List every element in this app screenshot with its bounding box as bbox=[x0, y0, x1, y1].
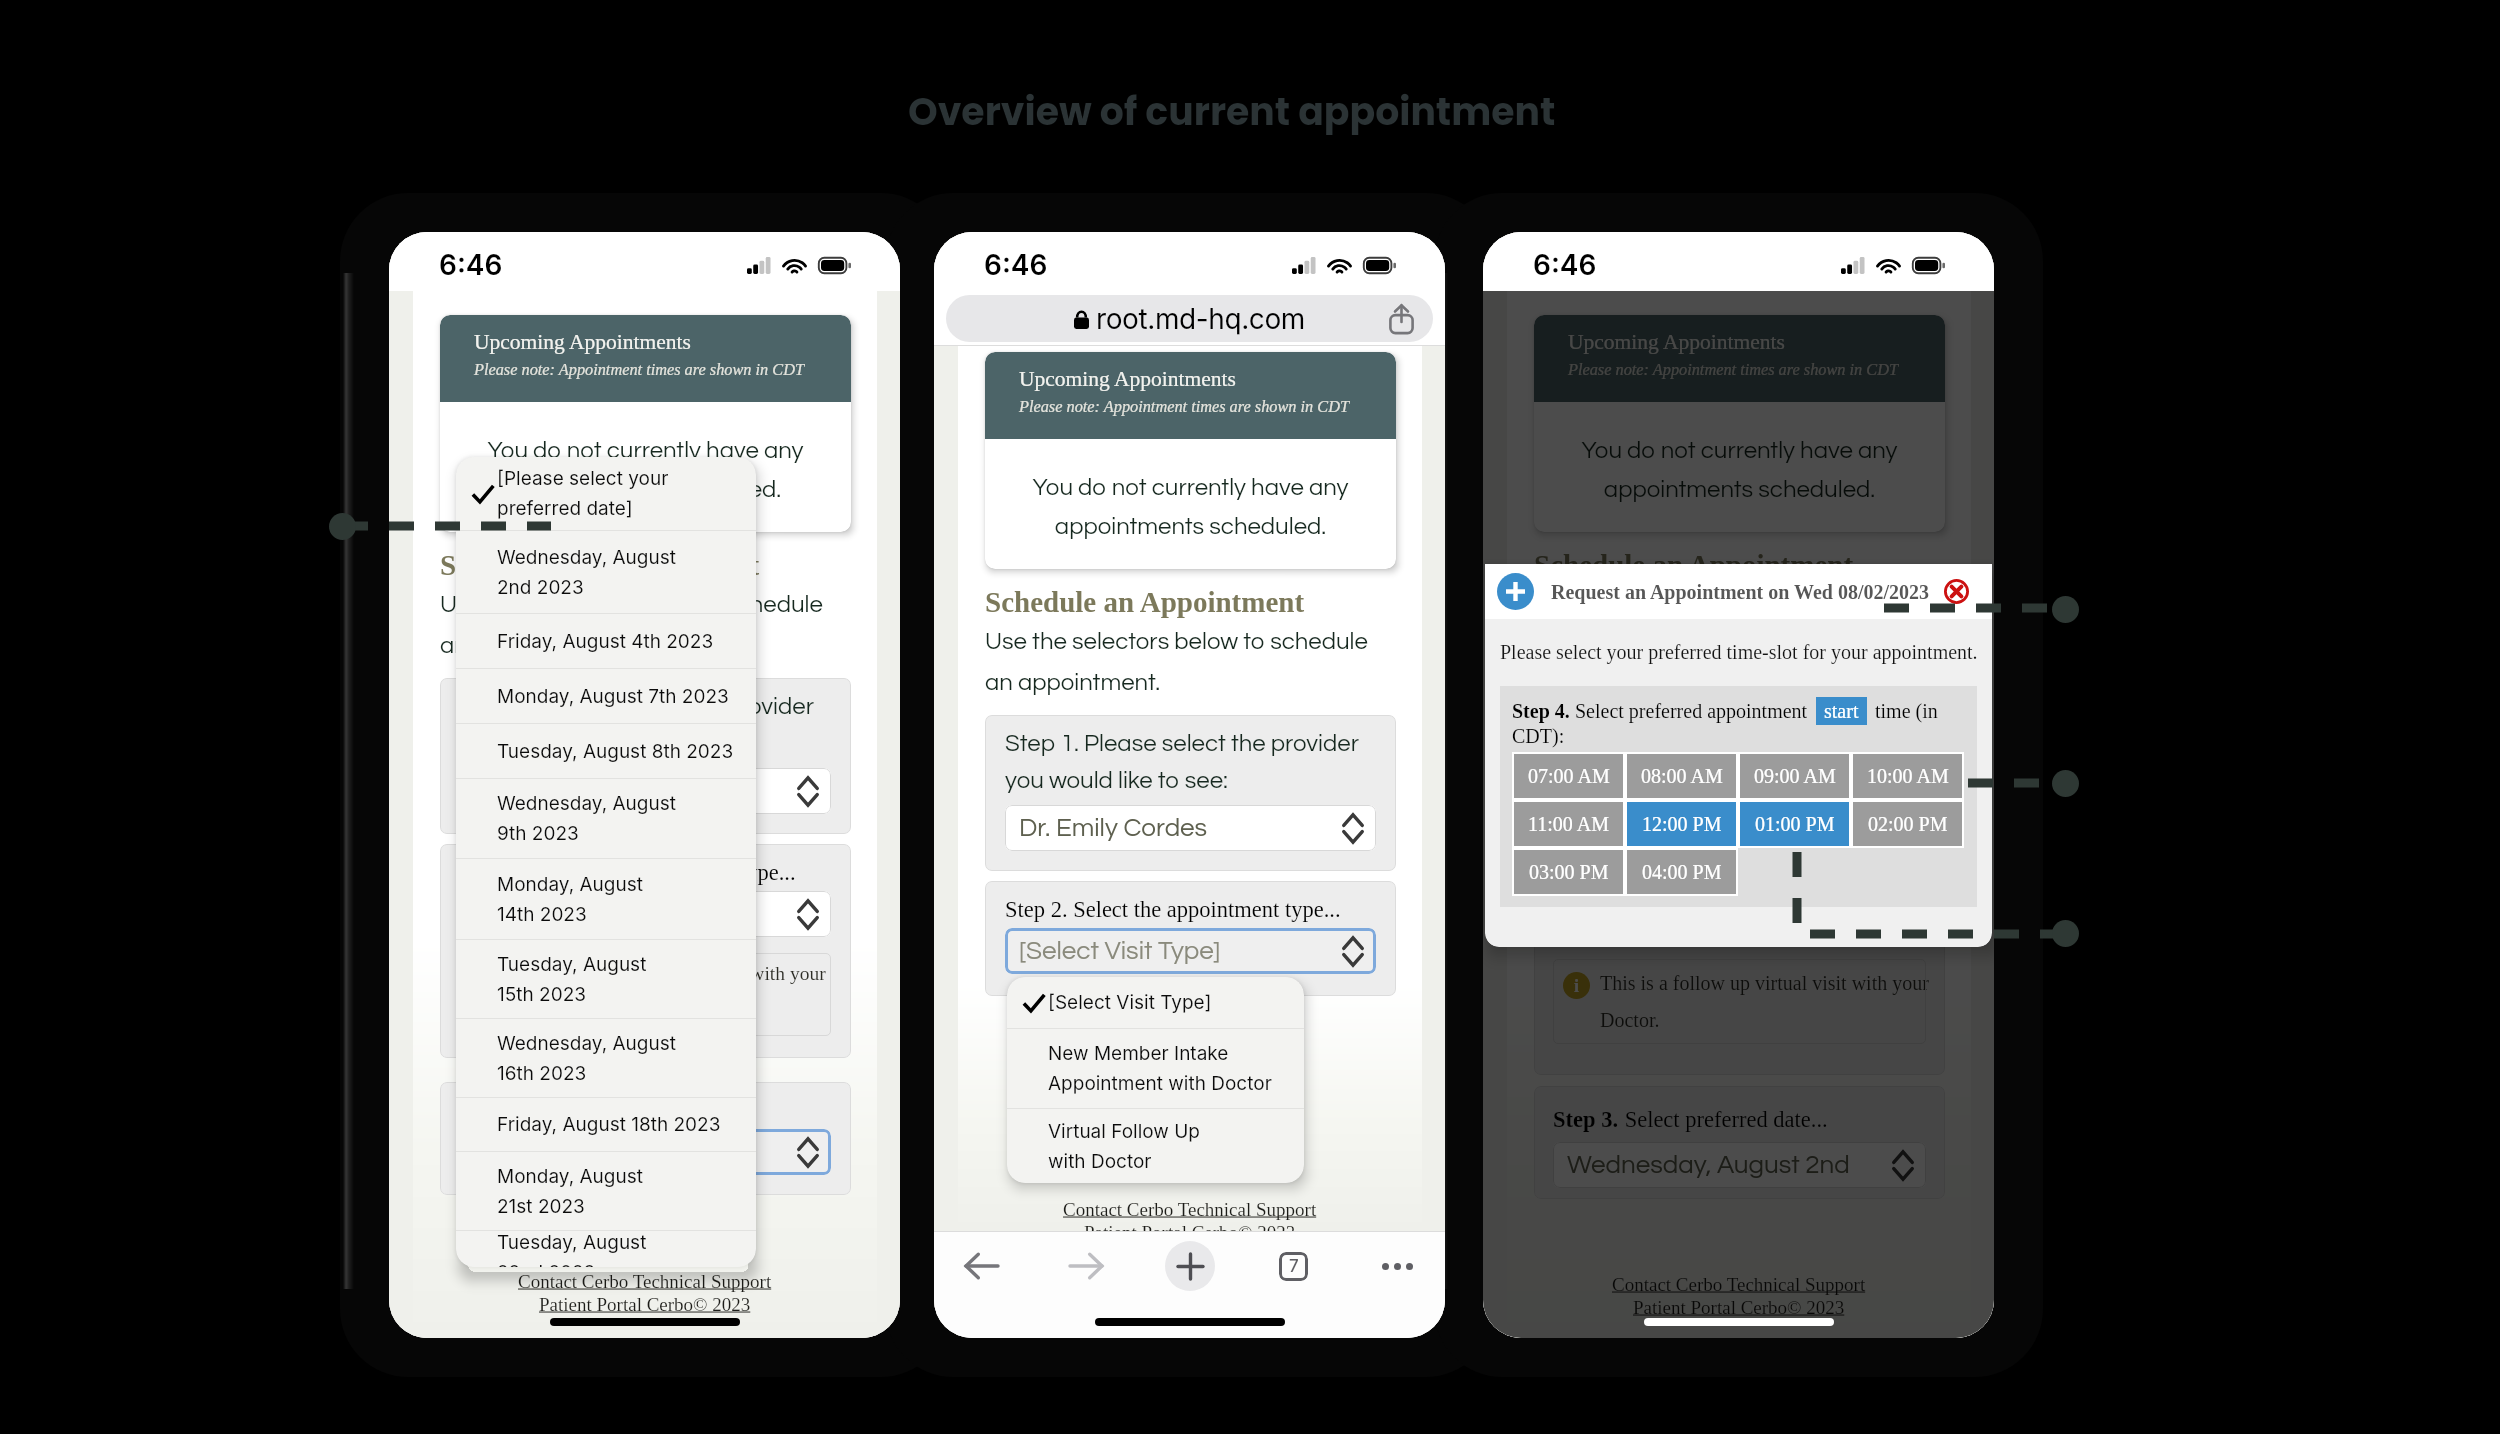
staticText: Upcoming Appointments bbox=[1568, 330, 1785, 354]
button[interactable]: root.md-hq.com bbox=[946, 295, 1433, 342]
button[interactable]: [Please select your preferred date] bbox=[460, 1129, 831, 1175]
button[interactable]: 03:00 PM bbox=[1514, 850, 1623, 894]
staticText: 10:00 AM bbox=[1867, 765, 1949, 787]
staticText: Please note: Appointment times are shown… bbox=[1019, 397, 1349, 415]
staticText: 6:46 bbox=[439, 248, 503, 282]
staticText: [Select Visit Type] bbox=[1019, 938, 1342, 965]
button[interactable]: 09:00 AM bbox=[1740, 754, 1849, 798]
button[interactable]: Forward bbox=[1060, 1240, 1112, 1292]
button[interactable]: 12:00 PM bbox=[1627, 802, 1736, 846]
staticText: Tuesday, August 8th 2023 bbox=[497, 740, 734, 763]
staticText: time (in bbox=[1875, 700, 1938, 722]
button[interactable]: Tuesday, August 15th 2023 bbox=[456, 940, 756, 1018]
staticText: Step 1. Please select the provider you w… bbox=[1005, 731, 1376, 793]
button[interactable]: Tuesday, August 22nd 2023 bbox=[456, 1231, 756, 1267]
staticText: 09:00 AM bbox=[1754, 765, 1836, 787]
staticText: [Select Visit Type] bbox=[1048, 991, 1212, 1014]
button[interactable]: More bbox=[1371, 1240, 1423, 1292]
button[interactable]: 02:00 PM bbox=[1853, 802, 1962, 846]
staticText: Wednesday, August 2nd 2023 bbox=[497, 546, 676, 599]
staticText: New Member Intake Appointment with Docto… bbox=[1048, 1042, 1272, 1095]
button[interactable]: 10:00 AM bbox=[1853, 754, 1962, 798]
button[interactable]: New tab bbox=[1165, 1241, 1215, 1291]
button[interactable]: Virtual Follow Up with Doctor bbox=[460, 891, 831, 937]
button[interactable]: 08:00 AM bbox=[1627, 754, 1736, 798]
button[interactable]: 01:00 PM bbox=[1740, 802, 1849, 846]
staticText: Monday, August 21st 2023 bbox=[497, 1165, 643, 1218]
staticText: Virtual Follow Up with Doctor bbox=[474, 901, 797, 928]
button[interactable]: [Select Visit Type] bbox=[1007, 977, 1304, 1028]
staticText: Upcoming Appointments bbox=[1019, 367, 1236, 391]
staticText: Tuesday, August 15th 2023 bbox=[497, 953, 647, 1006]
staticText: Please select your preferred time-slot f… bbox=[1500, 641, 1978, 663]
staticText: Dr. Emily Cordes bbox=[1019, 815, 1342, 842]
staticText: Please note: Appointment times are shown… bbox=[474, 360, 804, 378]
button[interactable]: 07:00 AM bbox=[1514, 754, 1623, 798]
button[interactable]: New Member Intake Appointment with Docto… bbox=[1007, 1029, 1304, 1108]
staticText: Step 4. bbox=[1512, 700, 1570, 722]
staticText: 7 bbox=[1289, 1256, 1299, 1277]
staticText: 01:00 PM bbox=[1755, 813, 1835, 835]
staticText: 07:00 AM bbox=[1528, 765, 1610, 787]
staticText: Contact Cerbo Technical Support bbox=[518, 1271, 772, 1292]
staticText: You do not currently have any appointmen… bbox=[995, 475, 1386, 539]
button[interactable]: Back bbox=[956, 1240, 1008, 1292]
staticText: Virtual Follow Up with Doctor bbox=[1048, 1120, 1200, 1173]
staticText: Contact Cerbo Technical Support bbox=[1063, 1199, 1317, 1220]
staticText: You do not currently have any appointmen… bbox=[450, 438, 841, 502]
staticText: 11:00 AM bbox=[1528, 813, 1609, 835]
staticText: [Please select your preferred date] bbox=[497, 467, 669, 520]
staticText: Wednesday, August 2nd 2023 bbox=[1567, 1152, 1892, 1179]
staticText: Doctor. bbox=[1600, 1009, 1660, 1031]
staticText: i bbox=[1574, 976, 1580, 996]
button[interactable]: Tuesday, August 8th 2023 bbox=[456, 724, 756, 778]
staticText: Request an Appointment on Wed 08/02/2023 bbox=[1551, 581, 1930, 603]
button[interactable]: [Select Visit Type] bbox=[1005, 928, 1376, 974]
staticText: Overview of current appointment bbox=[908, 85, 1556, 138]
button[interactable]: Wednesday, August 9th 2023 bbox=[456, 779, 756, 858]
staticText: Please note: Appointment times are shown… bbox=[1568, 360, 1898, 378]
button[interactable]: Wednesday, August 2nd 2023 bbox=[1553, 1142, 1926, 1188]
button[interactable]: Tabs bbox=[1267, 1240, 1319, 1292]
button[interactable]: Dr. Emily Cordes bbox=[1005, 805, 1376, 851]
button[interactable]: Dr. Emily Cordes bbox=[460, 768, 831, 814]
staticText: [Please select your preferred date] bbox=[474, 1139, 797, 1166]
staticText: Monday, August 14th 2023 bbox=[497, 873, 643, 926]
staticText: Schedule an Appointment bbox=[985, 586, 1305, 618]
staticText: Patient Portal Cerbo© 2023 bbox=[539, 1294, 751, 1315]
button[interactable]: Monday, August 21st 2023 bbox=[456, 1152, 756, 1230]
staticText: CDT): bbox=[1512, 725, 1565, 747]
button[interactable]: Monday, August 7th 2023 bbox=[456, 669, 756, 723]
staticText: Contact Cerbo Technical Support bbox=[1612, 1274, 1866, 1295]
staticText: Patient Portal Cerbo© 2023 bbox=[1084, 1222, 1296, 1243]
staticText: Step 3. Select preferred date... bbox=[460, 1098, 732, 1123]
staticText: 6:46 bbox=[1533, 248, 1597, 282]
staticText: This is a follow up virtual visit with y… bbox=[1600, 972, 1929, 994]
staticText: Schedule an Appointment bbox=[440, 549, 760, 581]
staticText: Friday, August 4th 2023 bbox=[497, 630, 714, 653]
staticText: Doctor. bbox=[505, 997, 563, 1019]
button[interactable]: Monday, August 14th 2023 bbox=[456, 859, 756, 939]
button[interactable]: 11:00 AM bbox=[1514, 802, 1623, 846]
button[interactable]: 04:00 PM bbox=[1627, 850, 1736, 894]
staticText: This is a follow up virtual visit with y… bbox=[505, 963, 826, 985]
staticText: start bbox=[1824, 700, 1859, 722]
staticText: Use the selectors below to schedule an a… bbox=[440, 592, 836, 658]
button[interactable]: Virtual Follow Up with Doctor bbox=[1007, 1109, 1304, 1183]
button[interactable]: Friday, August 18th 2023 bbox=[456, 1098, 756, 1151]
staticText: root.md-hq.com bbox=[1096, 302, 1305, 336]
button[interactable]: [Please select your preferred date] bbox=[456, 457, 756, 530]
other: Share bbox=[1389, 304, 1414, 334]
staticText: Step 2. Select the appointment type... bbox=[1005, 897, 1341, 922]
staticText: Select preferred appointment bbox=[1570, 700, 1808, 722]
button[interactable]: Wednesday, August 2nd 2023 bbox=[456, 531, 756, 613]
staticText: Monday, August 7th 2023 bbox=[497, 685, 729, 708]
button[interactable]: Close bbox=[1944, 579, 1969, 604]
staticText: 6:46 bbox=[984, 248, 1048, 282]
button[interactable]: Wednesday, August 16th 2023 bbox=[456, 1019, 756, 1097]
staticText: Upcoming Appointments bbox=[474, 330, 691, 354]
staticText: 04:00 PM bbox=[1642, 861, 1722, 883]
staticText: Patient Portal Cerbo© 2023 bbox=[1633, 1297, 1845, 1318]
button[interactable]: Friday, August 4th 2023 bbox=[456, 614, 756, 668]
